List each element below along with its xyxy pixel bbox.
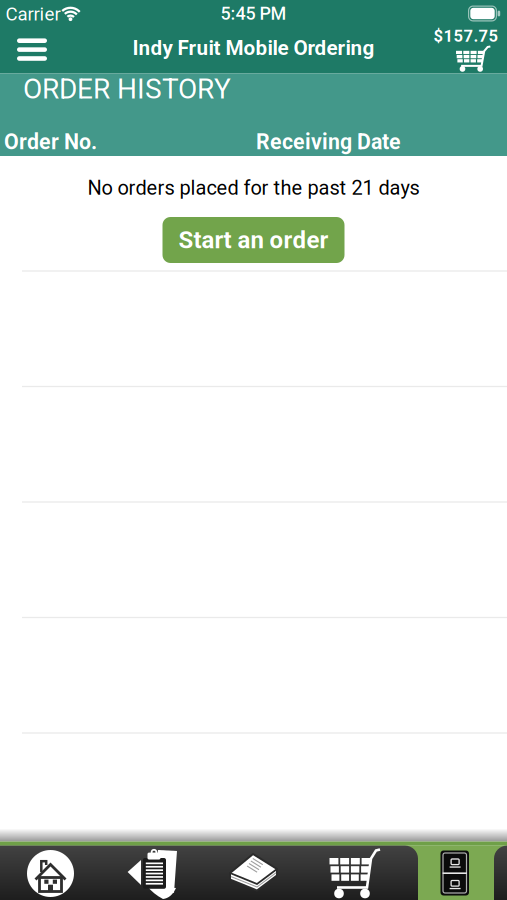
staticText: $157.75	[433, 26, 498, 46]
staticText: ORDER HISTORY	[23, 73, 231, 105]
button[interactable]	[304, 846, 406, 900]
button[interactable]: Start an order	[162, 217, 344, 263]
staticText: Start an order	[178, 226, 328, 254]
staticText: 5:45 PM	[220, 3, 286, 24]
staticText: No orders placed for the past 21 days	[87, 176, 419, 200]
staticText: Order No.	[4, 129, 97, 154]
button[interactable]: $157.75	[434, 28, 498, 76]
button[interactable]	[406, 846, 507, 900]
button[interactable]	[10, 30, 54, 70]
staticText: Receiving Date	[256, 129, 401, 154]
staticText: Carrier	[5, 3, 60, 25]
button[interactable]	[101, 846, 203, 900]
button[interactable]	[203, 846, 304, 900]
button[interactable]	[0, 846, 101, 900]
staticText: Indy Fruit Mobile Ordering	[132, 36, 374, 60]
